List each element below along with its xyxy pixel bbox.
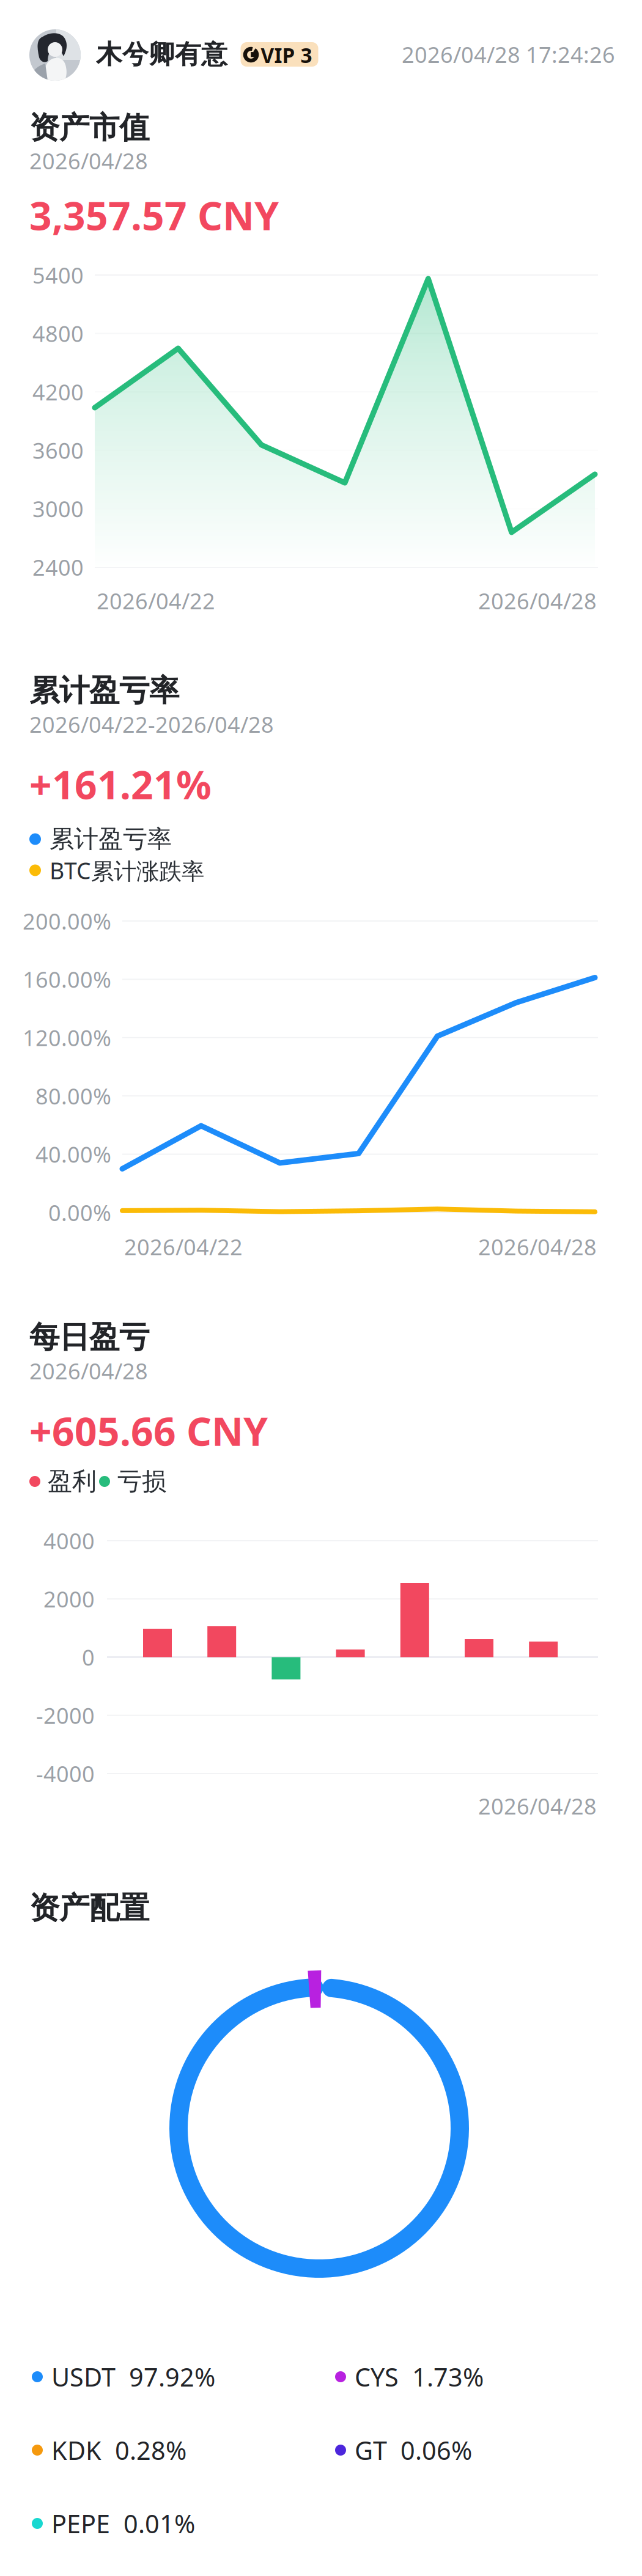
staticText: 资产配置 — [29, 1889, 149, 1927]
staticText: 2026/04/28 — [478, 586, 597, 615]
staticText: 160.00% — [23, 965, 111, 994]
staticText: 80.00% — [35, 1081, 111, 1111]
staticText: 0 — [82, 1643, 95, 1672]
staticText: 累计盈亏率 — [29, 672, 179, 709]
staticText: VIP 3 — [261, 41, 312, 69]
staticText: 3,357.57 CNY — [29, 189, 279, 241]
staticText: 木兮卿有意 — [96, 38, 227, 70]
staticText: 2400 — [32, 553, 84, 582]
staticText: 2000 — [43, 1584, 95, 1613]
staticText: 200.00% — [23, 906, 111, 936]
staticText: 0.00% — [48, 1198, 111, 1227]
staticText: +161.21% — [29, 758, 212, 810]
staticText: 4200 — [32, 377, 84, 406]
staticText: 亏损 — [117, 1466, 166, 1496]
staticText: USDT 97.92% — [51, 2360, 215, 2394]
staticText: 2026/04/28 — [478, 1791, 597, 1821]
staticText: 120.00% — [23, 1023, 111, 1052]
staticText: 累计盈亏率 — [50, 824, 172, 854]
staticText: 2026/04/28 — [29, 146, 148, 175]
staticText: 3000 — [32, 494, 84, 523]
staticText: 2026/04/22 — [97, 586, 215, 615]
staticText: -4000 — [36, 1759, 95, 1788]
staticText: 3600 — [32, 436, 84, 465]
staticText: 4800 — [32, 319, 84, 348]
staticText: 4000 — [43, 1526, 95, 1555]
staticText: GT 0.06% — [355, 2433, 472, 2467]
staticText: -2000 — [36, 1701, 95, 1730]
staticText: CYS 1.73% — [355, 2360, 484, 2394]
staticText: 资产市值 — [29, 109, 149, 146]
staticText: 40.00% — [35, 1140, 111, 1169]
staticText: PEPE 0.01% — [51, 2507, 195, 2540]
staticText: KDK 0.28% — [51, 2433, 186, 2467]
staticText: 2026/04/22-2026/04/28 — [29, 710, 274, 739]
staticText: +605.66 CNY — [29, 1405, 268, 1457]
button[interactable]: VIP level 3 — [241, 42, 318, 67]
button[interactable]: Profile avatar — [29, 29, 81, 81]
staticText: 5400 — [32, 260, 84, 290]
staticText: BTC累计涨跌率 — [50, 855, 204, 885]
staticText: 2026/04/28 — [478, 1232, 597, 1261]
staticText: 2026/04/28 — [29, 1356, 148, 1385]
staticText: 盈利 — [48, 1466, 97, 1496]
staticText: 2026/04/28 17:24:26 — [402, 40, 615, 69]
staticText: 每日盈亏 — [29, 1319, 149, 1356]
staticText: 2026/04/22 — [124, 1232, 243, 1261]
